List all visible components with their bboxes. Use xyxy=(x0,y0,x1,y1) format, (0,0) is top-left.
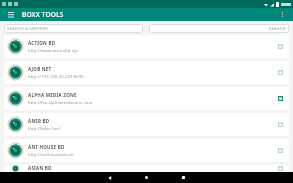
button[interactable]: Open ALPHA MEDIA ZONE xyxy=(276,94,285,103)
staticText: http://bdtv.live/ xyxy=(28,126,61,131)
button[interactable]: Open ACTION BD xyxy=(276,42,285,51)
button[interactable]: Home xyxy=(142,173,151,182)
staticText: http://103.106.30.223:8096 xyxy=(28,74,84,79)
button[interactable]: ALPHA MEDIA ZONE xyxy=(4,87,289,110)
button[interactable]: Open AMIR BD xyxy=(276,120,285,129)
staticText: http://www.actionbd.xyz xyxy=(28,48,79,53)
button[interactable]: Open navigation menu xyxy=(5,9,16,20)
staticText: ASIAN BD xyxy=(28,165,52,171)
button[interactable]: Open AJOB NET xyxy=(276,68,285,77)
staticText: AMIR BD xyxy=(28,118,50,124)
button[interactable]: SEARCH xyxy=(149,24,289,33)
button[interactable]: ASIAN BD xyxy=(4,165,289,172)
staticText: AJOB NET xyxy=(28,66,52,72)
button[interactable]: AMIR BD xyxy=(4,113,289,136)
button[interactable]: Open ASIAN BD xyxy=(276,165,285,172)
staticText: ANT HOUSE BD xyxy=(28,144,65,150)
staticText: ACTION BD xyxy=(28,40,56,46)
button[interactable]: AJOB NET xyxy=(4,61,289,84)
staticText: http://ftp.alphamediazone.com xyxy=(28,100,93,105)
button[interactable]: Open ANT HOUSE BD xyxy=(276,146,285,155)
staticText: ALPHA MEDIA ZONE xyxy=(28,92,77,98)
button[interactable]: SEARCH A SERVERS xyxy=(4,24,143,33)
staticText: BOXX TOOLS xyxy=(22,10,64,19)
staticText: SEARCH xyxy=(269,26,286,32)
staticText: http://anthousebd.net xyxy=(28,152,74,157)
button[interactable]: ACTION BD xyxy=(4,35,289,58)
button[interactable]: More options xyxy=(277,9,288,20)
staticText: SEARCH A SERVERS xyxy=(7,26,48,32)
button[interactable]: Recent apps xyxy=(179,173,188,182)
button[interactable]: ANT HOUSE BD xyxy=(4,139,289,162)
button[interactable]: Back xyxy=(105,173,114,182)
